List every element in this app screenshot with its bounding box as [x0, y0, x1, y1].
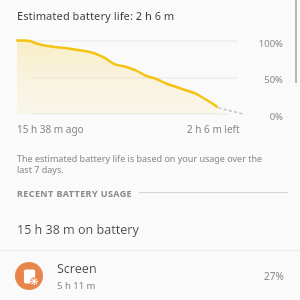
- staticText: 15 h 38 m ago: [17, 122, 84, 136]
- staticText: The estimated battery life is based on y…: [17, 152, 275, 176]
- staticText: 27%: [264, 269, 284, 283]
- staticText: 15 h 38 m on battery: [17, 221, 139, 238]
- staticText: 5 h 11 m: [57, 279, 96, 292]
- staticText: RECENT BATTERY USAGE: [17, 187, 133, 199]
- staticText: 2 h 6 m left: [187, 122, 240, 136]
- staticText: 50%: [264, 73, 283, 86]
- staticText: 100%: [258, 37, 283, 50]
- button[interactable]: Screen usage icon: [0, 251, 300, 300]
- other: Screen usage icon: [15, 262, 43, 290]
- staticText: Estimated battery life: 2 h 6 m: [17, 8, 175, 23]
- staticText: Screen: [57, 260, 97, 277]
- staticText: 0%: [269, 110, 283, 123]
